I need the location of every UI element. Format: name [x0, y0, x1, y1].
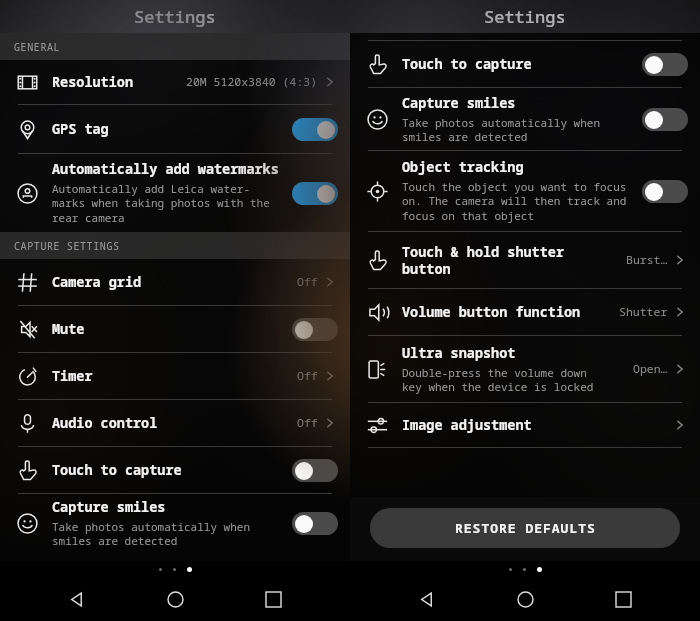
staticText: Resolution — [52, 73, 133, 91]
button[interactable]: Automatically add watermarks — [0, 154, 350, 232]
staticText: Touch the object you want to focus on. T… — [402, 179, 627, 224]
staticText: Double-press the volume down key when th… — [402, 365, 594, 395]
staticText: Off — [297, 368, 318, 384]
button[interactable]: Recent apps — [252, 578, 294, 620]
button[interactable]: Touch to capture — [292, 459, 338, 482]
button[interactable]: RESTORE DEFAULTS — [370, 508, 680, 548]
button[interactable]: Object tracking — [642, 180, 688, 203]
button[interactable]: Camera grid — [0, 259, 350, 305]
staticText: Open… — [633, 361, 668, 377]
staticText: Automatically add Leica water- marks whe… — [52, 181, 270, 226]
staticText: Touch & hold shutter button — [402, 243, 564, 278]
staticText: Mute — [52, 320, 85, 338]
button[interactable]: Mute — [0, 306, 350, 352]
staticText: Touch to capture — [52, 461, 182, 479]
staticText: Automatically add watermarks — [52, 160, 279, 178]
staticText: Settings — [484, 5, 566, 28]
staticText: Touch to capture — [402, 55, 532, 73]
staticText: Capture smiles — [52, 498, 166, 516]
staticText: 20M 5120x3840 (4:3) — [186, 74, 318, 90]
button[interactable]: Home — [154, 578, 196, 620]
staticText: Ultra snapshot — [402, 344, 516, 362]
button[interactable]: Capture smiles — [350, 88, 700, 150]
button[interactable]: Home — [504, 578, 546, 620]
button[interactable]: Resolution — [0, 60, 350, 104]
button[interactable]: Recent apps — [602, 578, 644, 620]
button[interactable]: Touch & hold shutter button — [350, 232, 700, 288]
button[interactable]: Image adjustment — [350, 403, 700, 447]
button[interactable]: GPS tag — [292, 118, 338, 141]
staticText: Camera grid — [52, 273, 142, 291]
staticText: RESTORE DEFAULTS — [455, 519, 596, 537]
button[interactable]: Touch to capture — [350, 41, 700, 87]
button[interactable]: Ultra snapshot — [350, 336, 700, 402]
staticText: Volume button function — [402, 303, 581, 321]
button[interactable]: Capture smiles — [292, 512, 338, 535]
button[interactable]: Back — [406, 578, 448, 620]
staticText: Capture smiles — [402, 94, 516, 112]
staticText: Timer — [52, 367, 93, 385]
staticText: Take photos automatically when smiles ar… — [402, 115, 600, 145]
staticText: Off — [297, 274, 318, 290]
button[interactable]: Timer — [0, 353, 350, 399]
staticText: CAPTURE SETTINGS — [14, 239, 120, 253]
button[interactable]: Object tracking — [350, 151, 700, 231]
staticText: Shutter — [619, 304, 668, 320]
staticText: GENERAL — [14, 40, 61, 54]
staticText: Take photos automatically when smiles ar… — [52, 519, 250, 549]
staticText: Settings — [134, 5, 216, 28]
staticText: Image adjustment — [402, 416, 532, 434]
staticText: Object tracking — [402, 158, 524, 176]
staticText: GPS tag — [52, 120, 109, 138]
staticText: Audio control — [52, 414, 158, 432]
staticText: Off — [297, 415, 318, 431]
button[interactable]: Automatically add watermarks — [292, 182, 338, 205]
staticText: Burst… — [626, 252, 668, 268]
button[interactable]: Volume button function — [350, 289, 700, 335]
button[interactable]: Back — [56, 578, 98, 620]
button[interactable]: Capture smiles — [0, 494, 350, 552]
button[interactable]: Audio control — [0, 400, 350, 446]
button[interactable]: Touch to capture — [642, 53, 688, 76]
button[interactable]: Touch to capture — [0, 447, 350, 493]
button[interactable]: GPS tag — [0, 105, 350, 153]
button[interactable]: Mute — [292, 318, 338, 341]
button[interactable]: Capture smiles — [642, 108, 688, 131]
